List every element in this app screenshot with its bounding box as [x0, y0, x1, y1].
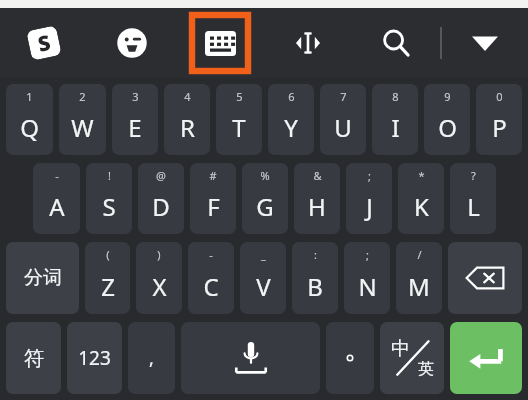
button[interactable]: Backspace — [448, 242, 522, 314]
button[interactable]: Period — [326, 322, 374, 394]
staticText: Y — [284, 111, 298, 144]
button[interactable]: _ — [240, 242, 286, 314]
staticText: F — [207, 190, 220, 223]
staticText: G — [256, 190, 274, 223]
button[interactable]: : — [292, 242, 338, 314]
staticText: R — [180, 111, 195, 144]
button[interactable]: 1 — [6, 84, 53, 155]
button[interactable]: 8 — [372, 84, 418, 155]
button[interactable]: * — [398, 163, 444, 234]
staticText: Q — [20, 111, 39, 144]
staticText: # — [209, 168, 217, 183]
button[interactable]: Move cursor — [264, 8, 352, 78]
staticText: ( — [106, 247, 110, 262]
button[interactable]: - — [33, 163, 80, 234]
button[interactable]: ! — [86, 163, 132, 234]
staticText: ; — [366, 247, 369, 262]
button[interactable]: - — [188, 242, 234, 314]
staticText: % — [260, 168, 270, 183]
staticText: T — [232, 111, 246, 144]
button[interactable]: @ — [138, 163, 184, 234]
staticText: 8 — [392, 89, 399, 104]
button[interactable]: # — [190, 163, 236, 234]
button[interactable]: Keyboard layout — [176, 8, 264, 78]
staticText: ) — [157, 247, 161, 262]
button[interactable]: Chinese English toggle — [380, 322, 444, 394]
staticText: _ — [261, 247, 266, 262]
button[interactable]: 9 — [424, 84, 470, 155]
staticText: 6 — [288, 89, 295, 104]
staticText: : — [314, 247, 317, 262]
button[interactable]: % — [242, 163, 288, 234]
button[interactable]: 0 — [476, 84, 522, 155]
button[interactable]: ; — [346, 163, 392, 234]
staticText: / — [417, 247, 422, 262]
button[interactable]: 6 — [268, 84, 314, 155]
staticText: & — [313, 168, 322, 183]
staticText: ? — [471, 168, 476, 183]
staticText: P — [492, 111, 507, 144]
button[interactable]: ( — [85, 242, 130, 314]
staticText: N — [358, 270, 377, 303]
staticText: ; — [368, 168, 371, 183]
button[interactable]: / — [396, 242, 442, 314]
staticText: S — [35, 28, 54, 59]
button[interactable]: 4 — [164, 84, 210, 155]
staticText: B — [307, 270, 323, 303]
staticText: C — [203, 270, 219, 303]
staticText: 英 — [418, 359, 434, 379]
button[interactable]: Hide keyboard — [442, 8, 528, 78]
staticText: W — [71, 111, 94, 144]
staticText: 1 — [26, 89, 33, 104]
button[interactable]: 5 — [216, 84, 262, 155]
button[interactable]: 3 — [112, 84, 158, 155]
button[interactable]: Space, voice input — [181, 322, 320, 394]
button[interactable]: ? — [450, 163, 496, 234]
staticText: * — [418, 168, 425, 183]
staticText: 9 — [444, 89, 451, 104]
staticText: 分词 — [24, 266, 62, 290]
button[interactable]: 7 — [320, 84, 366, 155]
staticText: I — [391, 111, 400, 144]
button[interactable]: 符 — [6, 322, 61, 394]
staticText: X — [152, 270, 167, 303]
staticText: 符 — [24, 346, 44, 371]
staticText: 3 — [132, 89, 139, 104]
button[interactable]: , — [128, 322, 175, 394]
staticText: A — [49, 190, 65, 223]
staticText: D — [152, 190, 170, 223]
staticText: 7 — [340, 89, 347, 104]
staticText: , — [149, 346, 154, 371]
staticText: 0 — [496, 89, 503, 104]
staticText: J — [366, 190, 373, 223]
staticText: ! — [108, 168, 111, 183]
staticText: - — [55, 168, 59, 183]
staticText: O — [438, 111, 457, 144]
staticText: S — [102, 190, 116, 223]
staticText: 5 — [236, 89, 243, 104]
button[interactable]: & — [294, 163, 340, 234]
button[interactable]: 123 — [67, 322, 122, 394]
staticText: U — [334, 111, 352, 144]
button[interactable]: Sogou input method — [0, 8, 88, 78]
staticText: M — [408, 270, 430, 303]
staticText: 123 — [78, 345, 111, 371]
staticText: 2 — [79, 89, 86, 104]
button[interactable]: Enter — [450, 322, 522, 394]
button[interactable]: ) — [136, 242, 182, 314]
staticText: E — [128, 111, 142, 144]
button[interactable]: Search — [352, 8, 440, 78]
staticText: Z — [101, 270, 115, 303]
staticText: 中 — [391, 337, 410, 361]
staticText: H — [308, 190, 326, 223]
staticText: - — [209, 247, 213, 262]
staticText: L — [467, 190, 480, 223]
button[interactable]: 2 — [59, 84, 106, 155]
button[interactable]: Emoji — [88, 8, 176, 78]
staticText: V — [256, 270, 271, 303]
button[interactable]: ; — [344, 242, 390, 314]
staticText: 4 — [184, 89, 191, 104]
staticText: K — [414, 190, 429, 223]
staticText: @ — [156, 168, 166, 183]
button[interactable]: 分词 — [6, 242, 79, 314]
